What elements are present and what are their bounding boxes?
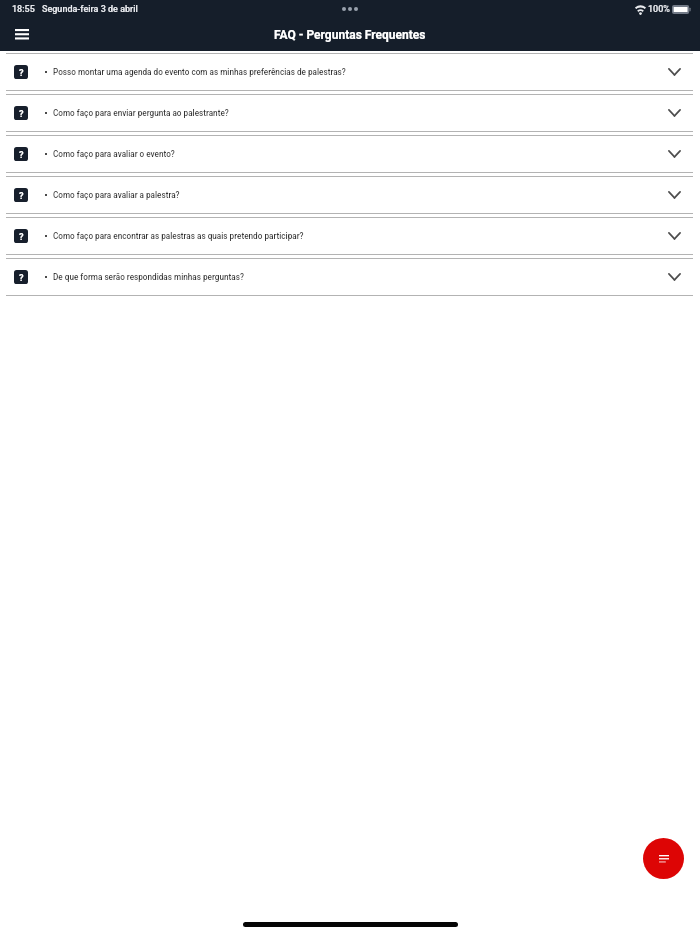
button[interactable]: ?: [0, 177, 700, 213]
staticText: 100%: [648, 4, 670, 15]
button[interactable]: Expandir resposta: [648, 54, 700, 90]
staticText: ?: [19, 272, 24, 283]
button[interactable]: ?: [0, 259, 700, 295]
button[interactable]: Expandir resposta: [648, 136, 700, 172]
staticText: ?: [19, 231, 24, 242]
button[interactable]: Expandir resposta: [648, 218, 700, 254]
staticText: Como faço para encontrar as palestras as…: [53, 231, 648, 241]
staticText: ?: [19, 149, 24, 160]
button[interactable]: Menu: [8, 20, 36, 48]
button[interactable]: Expandir resposta: [648, 259, 700, 295]
staticText: Posso montar uma agenda do evento com as…: [53, 67, 648, 77]
button[interactable]: ?: [0, 218, 700, 254]
button[interactable]: Expandir resposta: [648, 177, 700, 213]
staticText: Segunda-feira 3 de abril: [42, 4, 138, 15]
staticText: Como faço para avaliar a palestra?: [53, 190, 648, 200]
staticText: 18:55: [12, 4, 35, 15]
staticText: Como faço para avaliar o evento?: [53, 149, 648, 159]
staticText: ?: [19, 190, 24, 201]
button[interactable]: Expandir resposta: [648, 95, 700, 131]
staticText: De que forma serão respondidas minhas pe…: [53, 272, 648, 282]
staticText: FAQ - Perguntas Frequentes: [274, 28, 426, 42]
staticText: Como faço para enviar pergunta ao palest…: [53, 108, 648, 118]
button[interactable]: ?: [0, 95, 700, 131]
staticText: ?: [19, 108, 24, 119]
button[interactable]: ?: [0, 54, 700, 90]
button[interactable]: ?: [0, 136, 700, 172]
button[interactable]: Filtrar: [643, 838, 684, 879]
staticText: ?: [19, 67, 24, 78]
